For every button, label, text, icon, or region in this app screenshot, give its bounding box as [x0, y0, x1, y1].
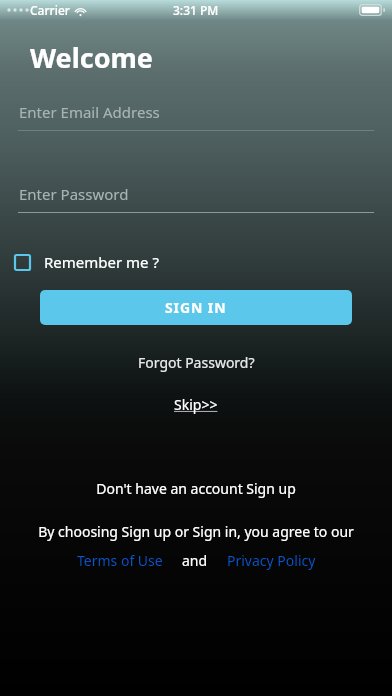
staticText: 3:31 PM — [173, 2, 219, 18]
staticText: Carrier — [30, 2, 70, 18]
button[interactable]: Remember me ? — [14, 250, 169, 274]
staticText: Enter Password — [19, 184, 129, 204]
staticText: and — [182, 551, 208, 570]
button[interactable]: Terms of Use — [75, 549, 165, 572]
button[interactable]: Skip>> — [166, 393, 226, 416]
button[interactable]: Forgot Password? — [130, 351, 263, 374]
button[interactable]: Enter Password — [0, 184, 392, 213]
button[interactable]: Enter Email Address — [0, 102, 392, 131]
staticText: Welcome — [30, 39, 153, 76]
button[interactable]: Privacy Policy — [225, 549, 318, 572]
button[interactable]: Don't have an account Sign up — [88, 477, 304, 500]
staticText: SIGN IN — [165, 298, 227, 317]
staticText: By choosing Sign up or Sign in, you agre… — [38, 522, 354, 541]
staticText: Enter Email Address — [19, 102, 160, 122]
staticText: Remember me ? — [44, 252, 159, 272]
button[interactable]: SIGN IN — [40, 290, 352, 325]
